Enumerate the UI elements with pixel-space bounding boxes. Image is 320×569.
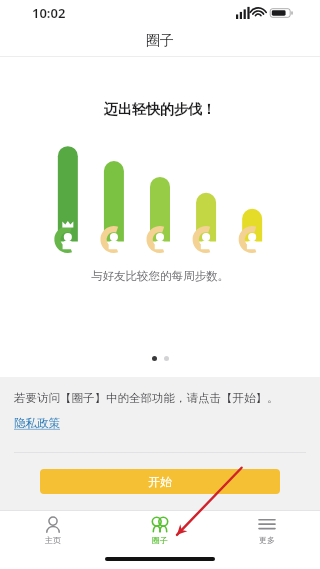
staticText: 10:02 — [32, 4, 66, 22]
button[interactable]: 主页 — [0, 511, 106, 549]
staticText: 更多 — [259, 535, 275, 545]
staticText: 迈出轻快的步伐！ — [104, 101, 216, 119]
staticText: 与好友比较您的每周步数。 — [91, 269, 229, 283]
staticText: 圈子 — [146, 32, 174, 50]
staticText: 主页 — [45, 535, 61, 545]
staticText: 隐私政策 — [14, 416, 60, 430]
button[interactable]: 开始 — [40, 469, 280, 494]
staticText: 圈子 — [152, 535, 168, 545]
staticText: 若要访问【圈子】中的全部功能，请点击【开始】。 — [14, 391, 279, 405]
button[interactable]: 圈子 — [106, 511, 213, 549]
button[interactable]: 隐私政策 — [14, 416, 60, 430]
staticText: 开始 — [148, 474, 172, 489]
button[interactable]: 更多 — [213, 511, 320, 549]
